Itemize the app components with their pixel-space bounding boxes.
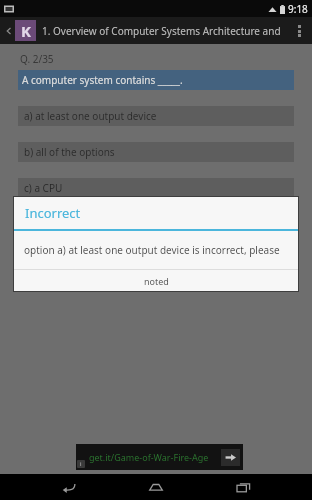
button[interactable]: Navigate up <box>3 25 15 37</box>
button[interactable]: noted <box>14 270 298 291</box>
staticText: K <box>21 21 31 41</box>
button[interactable]: A computer system contains _____. <box>18 70 294 90</box>
staticText: get.it/Game-of-War-Fire-Age <box>89 451 209 463</box>
staticText: i <box>80 460 82 468</box>
button[interactable]: Home <box>138 474 174 500</box>
button[interactable]: Recent apps <box>225 474 261 500</box>
staticText: A computer system contains _____. <box>22 73 183 87</box>
button[interactable]: More options <box>292 19 306 43</box>
staticText: a) at least one output device <box>24 109 157 123</box>
button[interactable]: b) all of the options <box>18 142 294 162</box>
button[interactable]: Advertisement <box>76 444 243 470</box>
button[interactable]: Back <box>51 474 87 500</box>
staticText: b) all of the options <box>24 145 115 159</box>
button[interactable]: c) a CPU <box>18 178 294 198</box>
staticText: noted <box>144 275 169 287</box>
staticText: Q. 2/35 <box>20 52 54 66</box>
staticText: c) a CPU <box>24 181 63 195</box>
staticText: Incorrect <box>25 204 81 222</box>
staticText: option a) at least one output device is … <box>24 243 292 257</box>
button[interactable]: a) at least one output device <box>18 106 294 126</box>
staticText: 9:18 <box>288 2 308 16</box>
staticText: 1. Overview of Computer Systems Architec… <box>42 24 288 38</box>
